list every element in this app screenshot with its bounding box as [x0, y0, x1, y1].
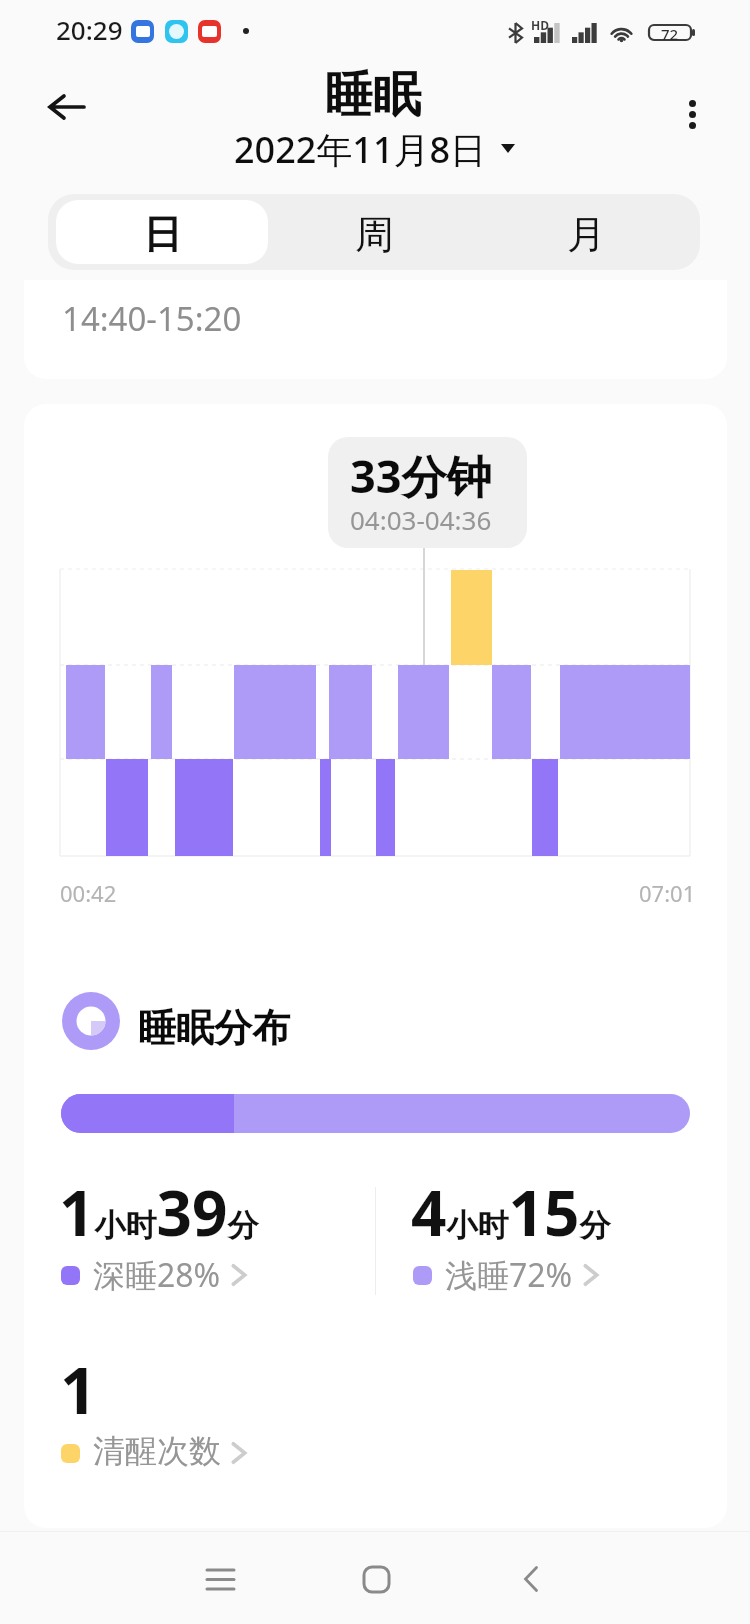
staticText: 04:03-04:36 [350, 502, 492, 537]
button[interactable]: More options [660, 81, 725, 147]
button[interactable] [24, 280, 727, 379]
staticText: 睡眠分布 [138, 1004, 290, 1052]
staticText: 00:42 [60, 878, 117, 908]
button[interactable]: 周 [268, 200, 480, 264]
staticText: 2022年11月8日 [234, 125, 487, 174]
staticText: 07:01 [639, 878, 696, 908]
staticText: 72 [661, 24, 679, 41]
staticText: 浅睡72% [445, 1253, 573, 1297]
staticText: 深睡28% [93, 1253, 221, 1297]
staticText: 4小时15分 [411, 1170, 611, 1254]
staticText: 33分钟 [350, 445, 492, 506]
staticText: 1小时39分 [59, 1170, 259, 1254]
button[interactable]: 日 [56, 200, 268, 264]
staticText: 清醒次数 [93, 1431, 221, 1471]
staticText: 1 [60, 1346, 97, 1433]
button[interactable]: Back [499, 1547, 563, 1611]
button[interactable]: 浅睡72% [413, 1265, 576, 1309]
staticText: 14:40-15:20 [62, 296, 242, 341]
staticText: 睡眠 [325, 65, 421, 125]
button[interactable]: 2022年11月8日 [234, 125, 501, 174]
button[interactable]: 月 [480, 200, 692, 264]
button[interactable]: 清醒次数 [61, 1443, 224, 1483]
button[interactable]: Back [29, 75, 105, 139]
staticText: 周 [355, 210, 394, 259]
staticText: 日 [143, 210, 182, 259]
button[interactable] [61, 1094, 690, 1133]
staticText: HD [531, 17, 549, 33]
button[interactable]: 深睡28% [61, 1265, 224, 1309]
staticText: 月 [567, 210, 606, 259]
button[interactable]: Home [344, 1547, 408, 1611]
button[interactable]: Recent apps [188, 1547, 252, 1611]
staticText: 20:29 [56, 12, 123, 47]
